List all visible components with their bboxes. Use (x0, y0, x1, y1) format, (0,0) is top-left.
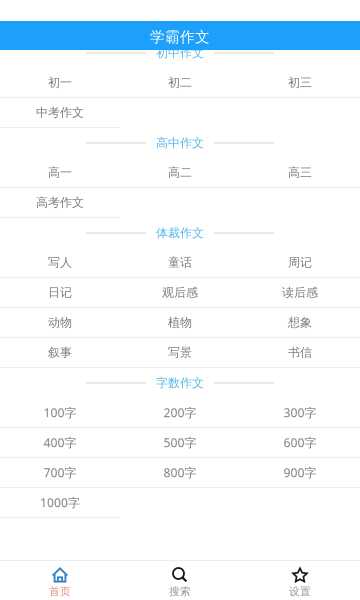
button[interactable]: 1000字 (0, 488, 120, 518)
button[interactable]: 初一 (0, 68, 120, 98)
button[interactable]: 高考作文 (0, 188, 120, 218)
button[interactable]: 200字 (120, 398, 240, 428)
button[interactable]: 写人 (0, 248, 120, 278)
staticText: 中考作文 (36, 105, 84, 120)
staticText: 动物 (48, 315, 72, 330)
button[interactable]: 植物 (120, 308, 240, 338)
button[interactable]: 写景 (120, 338, 240, 368)
staticText: 童话 (168, 255, 192, 270)
staticText: 400字 (43, 434, 76, 450)
staticText: 写景 (168, 345, 192, 360)
staticText: 设置 (289, 585, 311, 598)
button[interactable]: 童话 (120, 248, 240, 278)
staticText: 书信 (288, 345, 312, 360)
button[interactable]: 动物 (0, 308, 120, 338)
staticText: 字数作文 (156, 376, 204, 390)
staticText: 100字 (43, 404, 76, 420)
staticText: 叙事 (48, 345, 72, 360)
button[interactable]: 想象 (240, 308, 360, 338)
staticText: 学霸作文 (150, 28, 210, 46)
staticText: 高二 (168, 165, 192, 180)
staticText: 700字 (43, 464, 76, 480)
staticText: 体裁作文 (156, 226, 204, 240)
staticText: 初三 (288, 75, 312, 90)
staticText: 观后感 (162, 285, 198, 300)
button[interactable]: 700字 (0, 458, 120, 488)
button[interactable]: 高一 (0, 158, 120, 188)
staticText: 日记 (48, 285, 72, 300)
staticText: 初中作文 (156, 46, 204, 60)
button[interactable]: 100字 (0, 398, 120, 428)
button[interactable]: 800字 (120, 458, 240, 488)
button[interactable]: 300字 (240, 398, 360, 428)
staticText: 首页 (49, 585, 71, 598)
staticText: 800字 (163, 464, 196, 480)
staticText: 1000字 (40, 494, 80, 510)
staticText: 初一 (48, 75, 72, 90)
button[interactable]: 叙事 (0, 338, 120, 368)
button[interactable]: 500字 (120, 428, 240, 458)
button[interactable]: 中考作文 (0, 98, 120, 128)
button[interactable]: 初三 (240, 68, 360, 98)
staticText: 搜索 (169, 585, 191, 598)
button[interactable]: 首页 (0, 561, 120, 600)
button[interactable]: 观后感 (120, 278, 240, 308)
button[interactable]: 搜索 (120, 561, 240, 600)
staticText: 500字 (163, 434, 196, 450)
button[interactable]: 读后感 (240, 278, 360, 308)
button[interactable]: 高三 (240, 158, 360, 188)
staticText: 300字 (283, 404, 316, 420)
button[interactable]: 初二 (120, 68, 240, 98)
button[interactable]: 600字 (240, 428, 360, 458)
staticText: 高考作文 (36, 195, 84, 210)
staticText: 初二 (168, 75, 192, 90)
staticText: 读后感 (282, 285, 318, 300)
button[interactable]: 400字 (0, 428, 120, 458)
staticText: 200字 (163, 404, 196, 420)
staticText: 周记 (288, 255, 312, 270)
staticText: 写人 (48, 255, 72, 270)
staticText: 高三 (288, 165, 312, 180)
button[interactable]: 书信 (240, 338, 360, 368)
staticText: 想象 (288, 315, 312, 330)
staticText: 600字 (283, 434, 316, 450)
button[interactable]: 周记 (240, 248, 360, 278)
button[interactable]: 设置 (240, 561, 360, 600)
button[interactable]: 高二 (120, 158, 240, 188)
button[interactable]: 日记 (0, 278, 120, 308)
staticText: 高中作文 (156, 136, 204, 150)
button[interactable]: 900字 (240, 458, 360, 488)
staticText: 900字 (283, 464, 316, 480)
staticText: 植物 (168, 315, 192, 330)
staticText: 高一 (48, 165, 72, 180)
